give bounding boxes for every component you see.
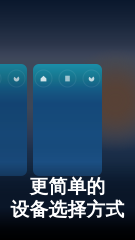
button[interactable]: Panel — [0, 67, 4, 90]
staticText: 更简单的 — [29, 175, 105, 198]
button[interactable]: Power — [5, 67, 28, 90]
button[interactable]: Panel — [56, 67, 79, 90]
button[interactable]: Power — [80, 67, 103, 90]
button[interactable]: Home — [32, 67, 55, 90]
staticText: 设备选择方式 — [10, 198, 124, 221]
